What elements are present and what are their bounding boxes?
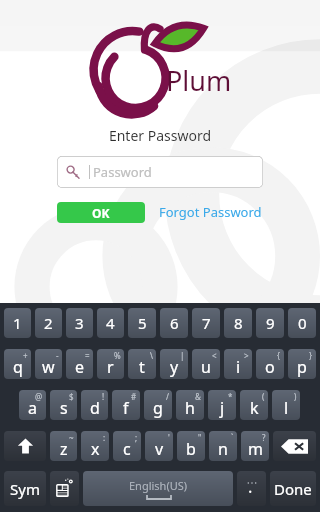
button[interactable]: Period: [237, 471, 266, 506]
button[interactable]: #: [112, 390, 140, 420]
staticText: z: [60, 438, 68, 460]
staticText: &: [195, 391, 201, 402]
staticText: #: [131, 391, 137, 402]
button[interactable]: ;: [113, 431, 141, 461]
button[interactable]: 9: [256, 308, 284, 338]
staticText: ): [294, 391, 297, 402]
button[interactable]: 0: [288, 308, 316, 338]
button[interactable]: -: [35, 349, 62, 379]
staticText: -: [56, 350, 59, 361]
button[interactable]: %: [97, 349, 124, 379]
staticText: 6: [170, 313, 179, 333]
button[interactable]: *: [208, 390, 236, 420]
button[interactable]: ): [272, 390, 300, 420]
staticText: q: [13, 356, 23, 378]
staticText: 0: [298, 313, 307, 333]
staticText: m: [248, 438, 263, 460]
staticText: 5: [138, 313, 147, 333]
staticText: OK: [92, 205, 110, 221]
staticText: }: [309, 350, 313, 361]
button[interactable]: ?: [241, 431, 269, 461]
staticText: +: [23, 350, 28, 361]
button[interactable]: 5: [128, 308, 156, 338]
staticText: l: [284, 397, 289, 419]
staticText: ;: [135, 432, 138, 443]
staticText: !: [102, 391, 105, 402]
staticText: Password: [93, 163, 152, 181]
button[interactable]: 2: [35, 308, 62, 338]
staticText: b: [186, 438, 196, 460]
staticText: c: [123, 438, 131, 460]
button[interactable]: (: [240, 390, 268, 420]
button[interactable]: >: [224, 349, 252, 379]
staticText: f: [123, 397, 129, 419]
staticText: n: [218, 438, 228, 460]
button[interactable]: {: [256, 349, 284, 379]
button[interactable]: 4: [97, 308, 124, 338]
button[interactable]: ~: [50, 431, 77, 461]
staticText: 4: [106, 313, 115, 333]
button[interactable]: <: [192, 349, 220, 379]
staticText: 8: [234, 313, 243, 333]
button[interactable]: \: [128, 349, 156, 379]
button[interactable]: Symbols: [4, 471, 46, 506]
button[interactable]: |: [160, 349, 188, 379]
staticText: h: [185, 397, 195, 419]
button[interactable]: @: [19, 390, 46, 420]
button[interactable]: =: [66, 349, 93, 379]
button[interactable]: :: [81, 431, 109, 461]
staticText: ': [168, 432, 170, 443]
staticText: English(US): [129, 478, 188, 493]
button[interactable]: Backspace: [273, 431, 316, 461]
button[interactable]: !: [81, 390, 108, 420]
staticText: a: [28, 397, 37, 419]
staticText: Forgot Password: [159, 203, 262, 221]
staticText: w: [42, 356, 55, 378]
button[interactable]: 3: [66, 308, 93, 338]
staticText: *: [228, 391, 233, 402]
staticText: ~: [69, 432, 74, 443]
button[interactable]: Input method: [50, 471, 79, 506]
staticText: k: [250, 397, 259, 419]
button[interactable]: 6: [160, 308, 188, 338]
button[interactable]: `: [209, 431, 237, 461]
button[interactable]: 7: [192, 308, 220, 338]
staticText: r: [107, 356, 114, 378]
staticText: 1: [13, 313, 22, 333]
button[interactable]: ': [145, 431, 173, 461]
staticText: v: [155, 438, 164, 460]
button[interactable]: $: [50, 390, 77, 420]
button[interactable]: Shift: [4, 431, 46, 461]
staticText: `: [231, 432, 234, 443]
button[interactable]: /: [144, 390, 172, 420]
button[interactable]: }: [288, 349, 316, 379]
button[interactable]: 1: [4, 308, 31, 338]
staticText: s: [60, 397, 68, 419]
button[interactable]: 8: [224, 308, 252, 338]
staticText: e: [75, 356, 85, 378]
staticText: Done: [274, 479, 312, 499]
button[interactable]: OK: [57, 202, 145, 223]
staticText: /: [166, 391, 169, 402]
staticText: 9: [266, 313, 275, 333]
staticText: =: [85, 350, 90, 361]
button[interactable]: ": [177, 431, 205, 461]
staticText: %: [114, 350, 121, 361]
button[interactable]: Space: [83, 471, 233, 506]
staticText: Enter Password: [0, 126, 320, 145]
staticText: <: [212, 350, 217, 361]
staticText: >: [244, 350, 249, 361]
staticText: ": [198, 432, 202, 443]
staticText: y: [170, 356, 179, 378]
button[interactable]: +: [4, 349, 31, 379]
staticText: Plum: [166, 62, 232, 99]
button[interactable]: Password: [57, 156, 263, 188]
button[interactable]: Done: [270, 471, 316, 506]
staticText: (: [262, 391, 265, 402]
staticText: u: [201, 356, 211, 378]
staticText: t: [139, 356, 145, 378]
button[interactable]: &: [176, 390, 204, 420]
staticText: 7: [202, 313, 211, 333]
staticText: :: [103, 432, 106, 443]
button[interactable]: Forgot Password: [157, 200, 264, 224]
